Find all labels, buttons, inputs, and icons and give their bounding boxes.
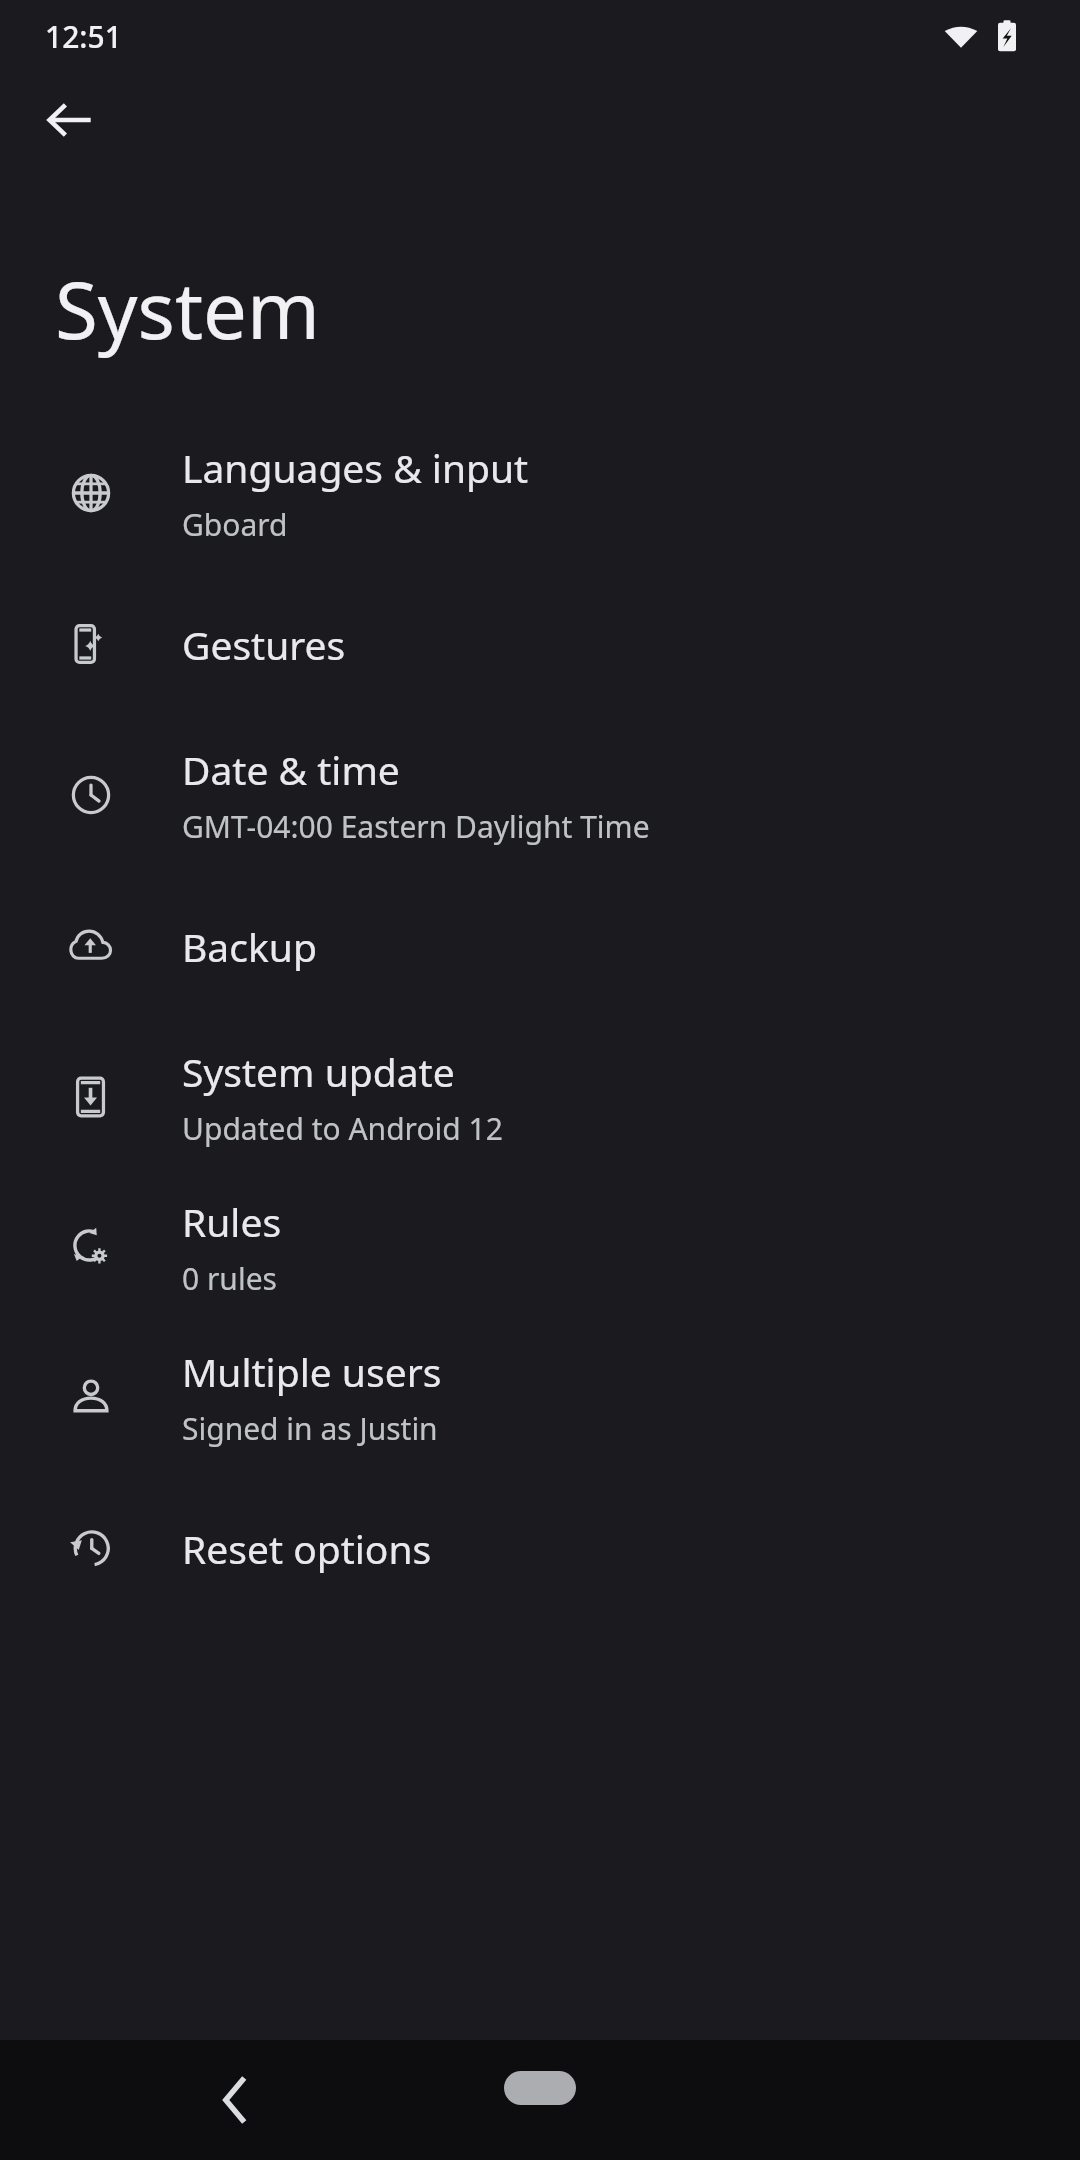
staticText: Date & time (182, 743, 400, 796)
button[interactable]: Gestures (0, 568, 1080, 720)
staticText: Signed in as Justin (182, 1408, 438, 1449)
staticText: Languages & input (182, 441, 529, 494)
staticText: System (55, 256, 321, 362)
button[interactable]: System update (0, 1022, 1080, 1172)
staticText: Gestures (182, 618, 346, 671)
staticText: Multiple users (182, 1345, 442, 1398)
button[interactable]: Navigate up (22, 72, 118, 168)
staticText: GMT-04:00 Eastern Daylight Time (182, 806, 650, 847)
button[interactable]: Languages & input (0, 418, 1080, 568)
staticText: Updated to Android 12 (182, 1108, 503, 1149)
staticText: 0 rules (182, 1258, 277, 1299)
staticText: Backup (182, 920, 317, 973)
button[interactable]: Backup (0, 870, 1080, 1022)
button[interactable]: Home (475, 2043, 605, 2133)
button[interactable]: Date & time (0, 720, 1080, 870)
staticText: Gboard (182, 504, 288, 545)
button[interactable]: Multiple users (0, 1322, 1080, 1472)
staticText: Rules (182, 1195, 282, 1248)
button[interactable]: Back (180, 2045, 290, 2155)
button[interactable]: Rules (0, 1172, 1080, 1322)
staticText: 12:51 (45, 16, 122, 57)
staticText: System update (182, 1045, 455, 1098)
button[interactable]: Reset options (0, 1472, 1080, 1624)
staticText: Reset options (182, 1522, 432, 1575)
